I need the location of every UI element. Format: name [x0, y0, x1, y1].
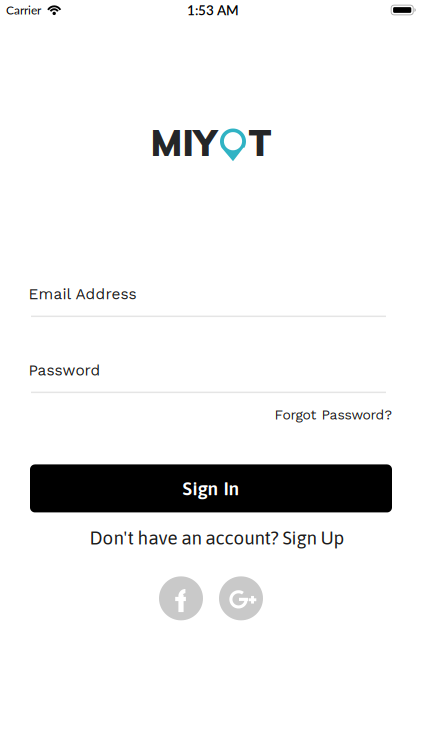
button[interactable]: Sign in with Google: [219, 576, 263, 620]
button[interactable]: Sign in with Facebook: [159, 576, 203, 620]
staticText: Email Address: [28, 285, 136, 303]
staticText: Sign In: [182, 477, 239, 499]
button[interactable]: Sign In: [30, 464, 392, 512]
staticText: Password: [28, 361, 100, 379]
button[interactable]: Password: [28, 361, 391, 393]
button[interactable]: Forgot Password?: [274, 407, 392, 423]
staticText: T: [248, 120, 271, 165]
staticText: Sign Up: [282, 527, 344, 548]
staticText: Carrier: [6, 3, 41, 17]
staticText: 1:53 AM: [187, 2, 239, 18]
staticText: Don't have an account?: [89, 527, 282, 548]
staticText: MIY: [150, 120, 217, 165]
button[interactable]: Sign Up: [282, 527, 344, 548]
staticText: Forgot Password?: [274, 407, 392, 423]
button[interactable]: Email Address: [28, 285, 391, 317]
